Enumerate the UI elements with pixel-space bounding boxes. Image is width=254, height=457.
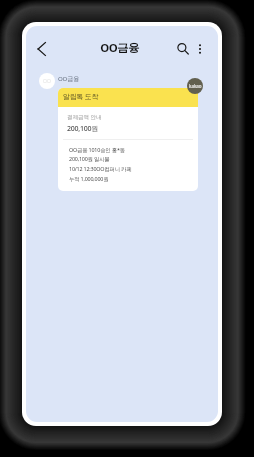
staticText: OO금융 1010승인 홍*동 200,100원 일시불 10/12 12:30… xyxy=(69,146,132,183)
button[interactable]: Search xyxy=(173,39,193,59)
staticText: 결제금액 안내 xyxy=(67,113,102,121)
staticText: OO금융 xyxy=(58,74,79,82)
button[interactable]: Back xyxy=(32,39,52,59)
staticText: 200,100원 xyxy=(67,124,98,134)
staticText: kakao xyxy=(189,83,202,89)
staticText: OO xyxy=(43,78,51,85)
staticText: 알림톡 도착 xyxy=(63,92,99,102)
button[interactable]: More options xyxy=(190,39,210,59)
staticText: OO금융 xyxy=(100,40,139,56)
